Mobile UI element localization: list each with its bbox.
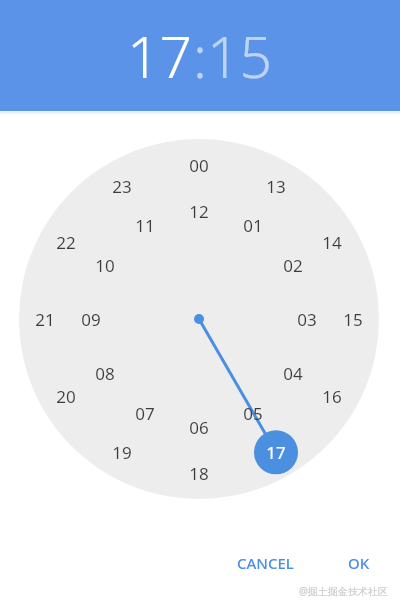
staticText: 16 xyxy=(322,385,342,408)
button[interactable]: CANCEL xyxy=(227,546,304,580)
staticText: 11 xyxy=(135,214,155,237)
button[interactable]: 07 xyxy=(125,393,165,433)
button[interactable]: 11 xyxy=(125,205,165,245)
staticText: 13 xyxy=(266,175,286,198)
button[interactable]: 02 xyxy=(273,245,313,285)
staticText: OK xyxy=(348,553,370,573)
staticText: 21 xyxy=(35,308,55,331)
staticText: 17 xyxy=(266,441,286,464)
button[interactable]: 22 xyxy=(46,222,86,262)
staticText: 15 xyxy=(343,308,363,331)
staticText: 01 xyxy=(243,214,263,237)
button[interactable]: 00 xyxy=(179,145,219,185)
button[interactable]: 19 xyxy=(102,432,142,472)
button[interactable]: 08 xyxy=(85,353,125,393)
button[interactable]: 01 xyxy=(233,205,273,245)
staticText: 17 xyxy=(127,17,193,95)
button[interactable]: OK xyxy=(338,546,380,580)
button[interactable]: 09 xyxy=(71,299,111,339)
button[interactable]: 15 xyxy=(207,17,273,95)
button[interactable]: 10 xyxy=(85,245,125,285)
staticText: 14 xyxy=(322,231,342,254)
button[interactable]: 12 xyxy=(179,191,219,231)
button[interactable]: 18 xyxy=(179,453,219,493)
staticText: 20 xyxy=(56,385,76,408)
staticText: 15 xyxy=(207,17,273,95)
staticText: 06 xyxy=(189,416,209,439)
button[interactable]: 20 xyxy=(46,376,86,416)
button[interactable]: 23 xyxy=(102,166,142,206)
button[interactable]: 14 xyxy=(312,222,352,262)
staticText: 18 xyxy=(189,462,209,485)
button[interactable]: 17 xyxy=(127,17,193,95)
button[interactable]: 15 xyxy=(333,299,373,339)
staticText: 23 xyxy=(112,175,132,198)
staticText: 22 xyxy=(56,231,76,254)
staticText: 00 xyxy=(189,154,209,177)
staticText: CANCEL xyxy=(237,553,294,573)
staticText: 05 xyxy=(243,402,263,425)
staticText: 07 xyxy=(135,402,155,425)
button[interactable]: 04 xyxy=(273,353,313,393)
staticText: 10 xyxy=(95,254,115,277)
button[interactable]: 13 xyxy=(256,166,296,206)
staticText: 09 xyxy=(81,308,101,331)
staticText: : xyxy=(193,17,207,95)
staticText: 08 xyxy=(95,362,115,385)
button[interactable]: 21 xyxy=(25,299,65,339)
button[interactable]: 06 xyxy=(179,407,219,447)
button[interactable]: 03 xyxy=(287,299,327,339)
button[interactable]: 16 xyxy=(312,376,352,416)
button[interactable]: 05 xyxy=(233,393,273,433)
staticText: 04 xyxy=(283,362,303,385)
staticText: 12 xyxy=(189,200,209,223)
staticText: 19 xyxy=(112,441,132,464)
staticText: 02 xyxy=(283,254,303,277)
staticText: @掘土掘金技术社区 xyxy=(299,584,388,598)
staticText: 03 xyxy=(297,308,317,331)
button[interactable]: 17 xyxy=(256,432,296,472)
